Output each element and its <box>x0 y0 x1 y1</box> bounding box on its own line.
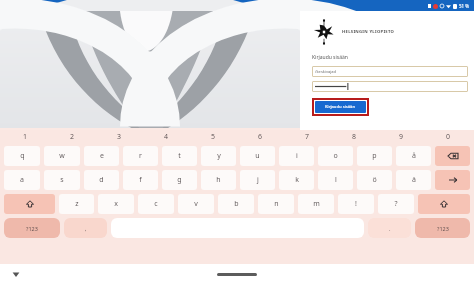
button[interactable]: Shift <box>4 194 55 214</box>
button[interactable]: o <box>318 146 353 166</box>
staticText: x <box>114 199 118 209</box>
staticText: j <box>257 175 259 185</box>
button[interactable]: å <box>396 146 431 166</box>
staticText: i <box>296 151 298 161</box>
button[interactable]: e <box>84 146 119 166</box>
button[interactable]: i <box>279 146 314 166</box>
staticText: 0 <box>446 132 451 142</box>
button[interactable]: Kirjaudu sisään <box>315 101 366 113</box>
staticText: 4 <box>164 132 169 142</box>
staticText: y <box>217 151 221 161</box>
button[interactable]: Backspace <box>435 146 470 166</box>
staticText: Kirjaudu sisään <box>325 104 356 110</box>
staticText: . <box>389 225 391 232</box>
staticText: , <box>85 225 87 232</box>
staticText: n <box>274 199 279 209</box>
button[interactable]: /keskivajad <box>312 66 468 77</box>
staticText: 9 <box>399 132 404 142</box>
staticText: c <box>154 199 158 209</box>
button[interactable]: 1 <box>2 130 49 144</box>
staticText: v <box>194 199 198 209</box>
button[interactable]: d <box>84 170 119 190</box>
button[interactable]: v <box>178 194 214 214</box>
button[interactable]: t <box>162 146 197 166</box>
button[interactable]: m <box>298 194 334 214</box>
staticText: ?123 <box>437 225 449 232</box>
staticText: r <box>139 151 142 161</box>
staticText: 2 <box>70 132 75 142</box>
button[interactable]: l <box>318 170 353 190</box>
staticText: 8 <box>352 132 357 142</box>
staticText: ö <box>372 175 377 185</box>
button[interactable]: 8 <box>331 130 378 144</box>
button[interactable]: ö <box>357 170 392 190</box>
button[interactable]: q <box>4 146 40 166</box>
staticText: z <box>75 199 79 209</box>
button[interactable] <box>312 81 468 92</box>
staticText: 5 <box>211 132 216 142</box>
button[interactable]: ! <box>338 194 374 214</box>
staticText: o <box>333 151 338 161</box>
staticText: k <box>295 175 299 185</box>
staticText: ! <box>355 199 357 209</box>
button[interactable]: p <box>357 146 392 166</box>
button[interactable]: 3 <box>96 130 143 144</box>
button[interactable]: 7 <box>284 130 331 144</box>
button[interactable]: 0 <box>425 130 472 144</box>
button[interactable]: z <box>59 194 94 214</box>
button[interactable]: y <box>201 146 236 166</box>
staticText: a <box>20 175 24 185</box>
staticText: å <box>412 151 416 161</box>
button[interactable]: w <box>44 146 80 166</box>
button[interactable]: h <box>201 170 236 190</box>
button[interactable]: Hide keyboard <box>10 268 22 280</box>
button[interactable]: 4 <box>143 130 190 144</box>
staticText: ?123 <box>26 225 38 232</box>
button[interactable]: 5 <box>190 130 237 144</box>
button[interactable]: j <box>240 170 275 190</box>
button[interactable]: u <box>240 146 275 166</box>
button[interactable]: Enter <box>435 170 470 190</box>
button[interactable]: s <box>44 170 80 190</box>
staticText: q <box>20 151 25 161</box>
staticText: u <box>255 151 260 161</box>
button[interactable]: 2 <box>49 130 96 144</box>
staticText: p <box>372 151 377 161</box>
button[interactable]: 9 <box>378 130 425 144</box>
staticText: w <box>59 151 65 161</box>
staticText: ? <box>394 199 398 209</box>
button[interactable]: 6 <box>237 130 284 144</box>
button[interactable]: Shift right <box>418 194 470 214</box>
button[interactable]: , <box>64 218 107 238</box>
staticText: l <box>335 175 337 185</box>
staticText: g <box>177 175 182 185</box>
button[interactable]: ä <box>396 170 431 190</box>
button[interactable]: a <box>4 170 40 190</box>
staticText: HELSINGIN YLIOPISTO <box>342 29 395 35</box>
button[interactable]: b <box>218 194 254 214</box>
staticText: f <box>139 175 142 185</box>
button[interactable]: n <box>258 194 294 214</box>
staticText: m <box>313 199 320 209</box>
staticText: /keskivajad <box>315 69 336 74</box>
button[interactable]: ?123 <box>415 218 470 238</box>
staticText: b <box>234 199 239 209</box>
button[interactable]: x <box>98 194 134 214</box>
button[interactable]: ? <box>378 194 414 214</box>
staticText: s <box>60 175 64 185</box>
button[interactable]: k <box>279 170 314 190</box>
staticText: 1 <box>23 132 28 142</box>
staticText: d <box>99 175 104 185</box>
button[interactable]: g <box>162 170 197 190</box>
staticText: 6 <box>258 132 263 142</box>
staticText: Kirjaudu sisään <box>312 54 348 61</box>
staticText: 51 % <box>459 3 470 9</box>
staticText: 3 <box>117 132 122 142</box>
button[interactable]: f <box>123 170 158 190</box>
button[interactable]: c <box>138 194 174 214</box>
button[interactable]: r <box>123 146 158 166</box>
staticText: ä <box>412 175 416 185</box>
button[interactable]: ?123 <box>4 218 60 238</box>
